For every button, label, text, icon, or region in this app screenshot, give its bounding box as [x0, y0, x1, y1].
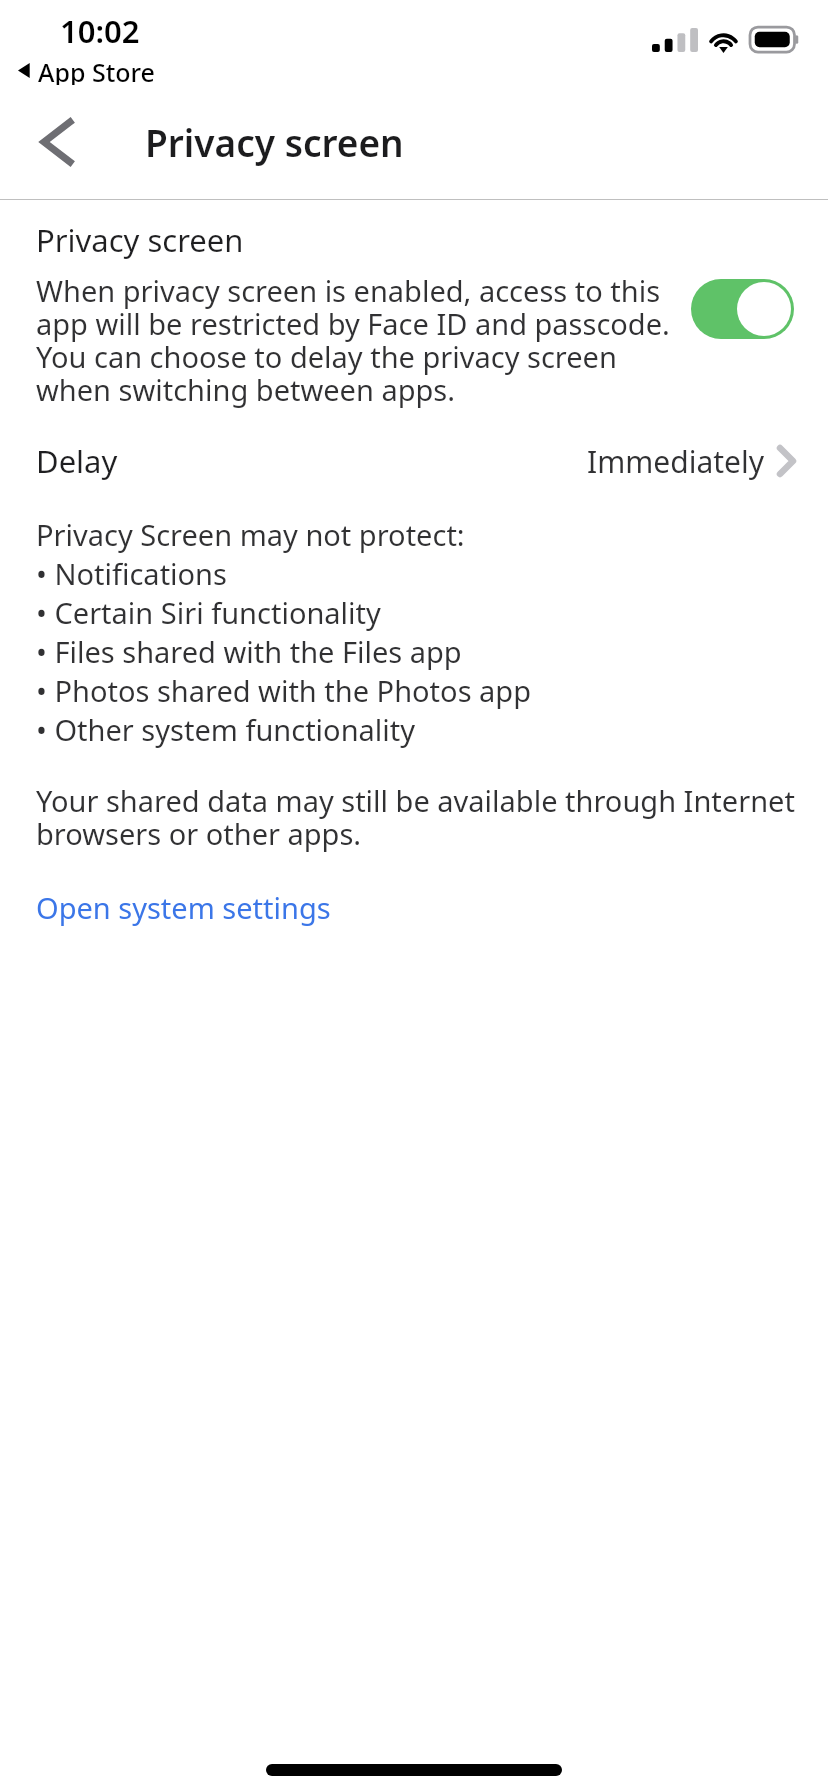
button[interactable]: Back	[14, 99, 100, 185]
staticText: • Photos shared with the Photos app	[36, 671, 532, 710]
staticText: Privacy screen	[145, 117, 404, 167]
staticText: Open system settings	[36, 888, 331, 927]
staticText: App Store	[38, 55, 155, 85]
staticText: Privacy screen	[36, 219, 244, 261]
button[interactable]: Delay	[0, 436, 828, 486]
staticText: • Files shared with the Files app	[36, 632, 462, 671]
staticText: Your shared data may still be available …	[36, 781, 798, 854]
staticText: Immediately	[587, 441, 764, 482]
staticText: Delay	[36, 440, 118, 482]
staticText: 10:02	[60, 10, 140, 52]
staticText: • Other system functionality	[36, 710, 416, 749]
staticText: • Certain Siri functionality	[36, 593, 381, 632]
button[interactable]: Open system settings	[36, 888, 331, 927]
staticText: • Notifications	[36, 554, 227, 593]
button[interactable]: Privacy screen toggle, on	[691, 279, 794, 339]
staticText: Privacy Screen may not protect:	[36, 515, 465, 554]
staticText: When privacy screen is enabled, access t…	[36, 271, 675, 410]
